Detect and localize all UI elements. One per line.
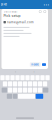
staticText: Pick setup — [3, 14, 20, 18]
staticText: Verify email — [3, 10, 17, 13]
button[interactable]: Help — [39, 10, 41, 13]
staticText: • — [15, 70, 17, 73]
staticText: name@mail.com — [7, 20, 34, 24]
staticText: 9:41 — [0, 2, 7, 7]
staticText: Resend — [31, 63, 39, 66]
staticText: ▪▪▪ — [43, 3, 49, 6]
staticText: • — [33, 70, 35, 73]
button[interactable]: Send — [42, 63, 46, 66]
button[interactable]: Account — [44, 10, 46, 13]
button[interactable]: Resend — [30, 62, 41, 67]
